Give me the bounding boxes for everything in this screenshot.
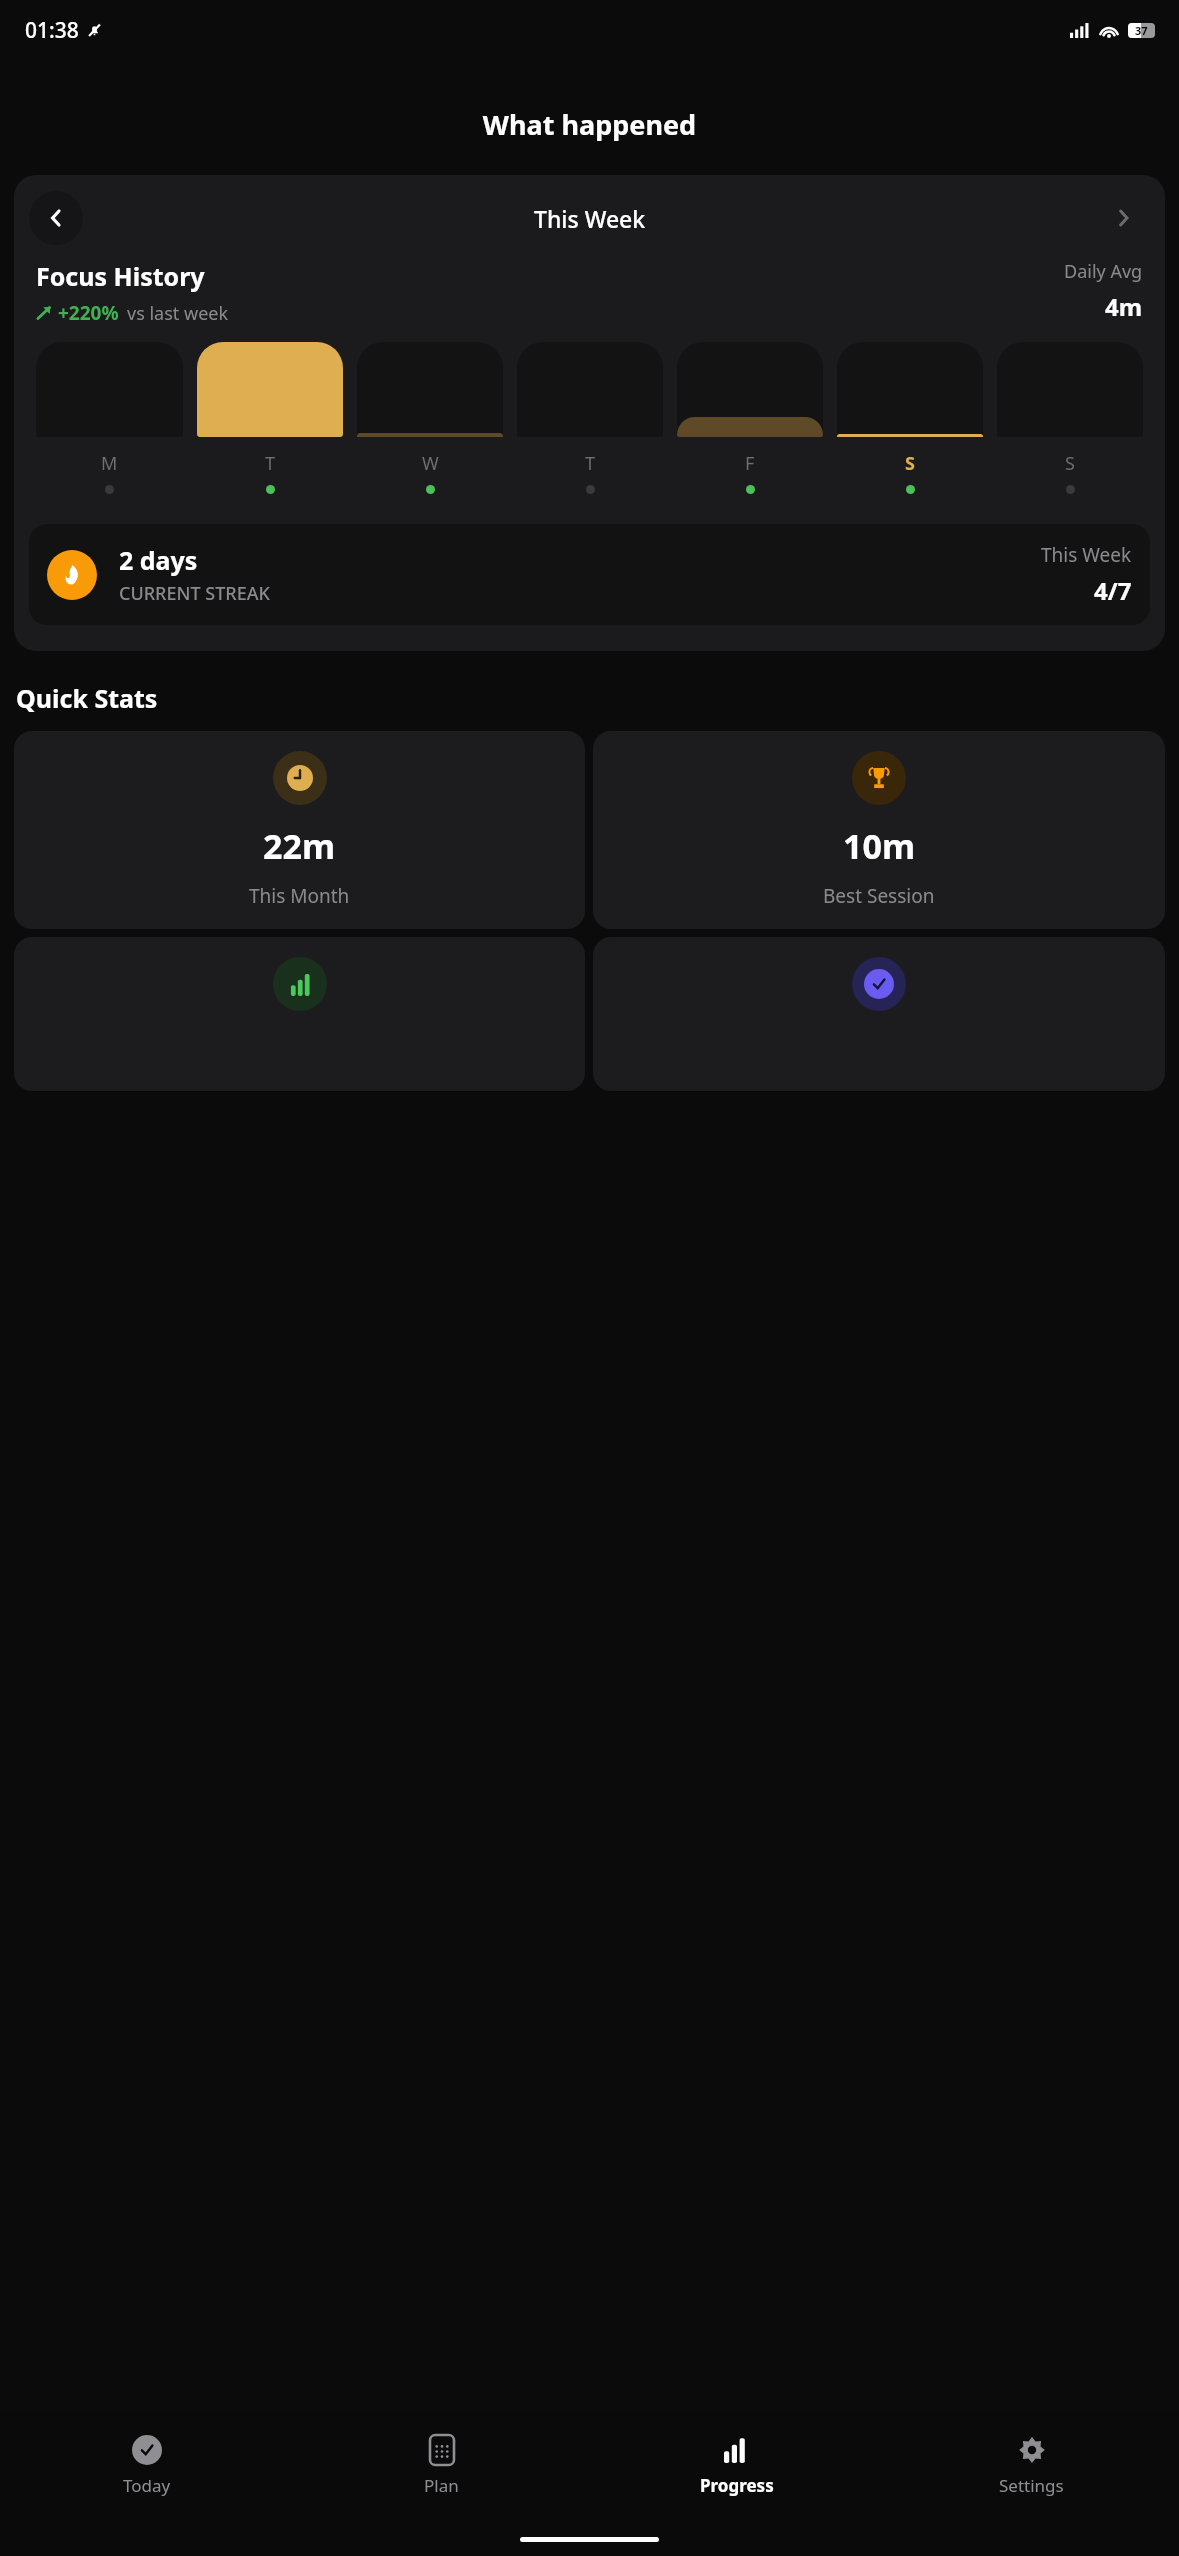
staticText: 4m <box>1105 290 1143 323</box>
staticText: 10m <box>843 823 916 869</box>
staticText: This Week <box>1041 542 1132 568</box>
staticText: 01:38 <box>25 16 79 45</box>
staticText: CURRENT STREAK <box>119 581 270 606</box>
staticText: This Month <box>249 883 350 909</box>
button[interactable]: Next week <box>1096 191 1150 245</box>
button[interactable]: Progress <box>589 2430 884 2499</box>
staticText: Settings <box>999 2474 1064 2497</box>
staticText: +220% <box>58 300 119 326</box>
staticText: This Week <box>534 203 646 234</box>
button[interactable]: Today <box>0 2430 294 2499</box>
staticText: Plan <box>424 2474 459 2497</box>
button[interactable]: Settings <box>884 2430 1179 2499</box>
staticText: Best Session <box>823 883 935 909</box>
staticText: What happened <box>0 106 1179 143</box>
staticText: 22m <box>263 823 336 869</box>
staticText: T <box>265 451 276 476</box>
button[interactable] <box>14 937 585 1091</box>
staticText: vs last week <box>127 301 229 326</box>
button[interactable] <box>593 937 1165 1091</box>
button[interactable]: 2 days <box>29 524 1150 625</box>
staticText: 2 days <box>119 543 198 577</box>
staticText: W <box>422 451 439 476</box>
staticText: Progress <box>700 2474 774 2497</box>
staticText: 37 <box>1135 23 1148 38</box>
staticText: Today <box>123 2474 171 2497</box>
button[interactable]: Plan <box>294 2430 589 2499</box>
button[interactable]: 22m <box>14 731 585 929</box>
staticText: Focus History <box>36 259 205 293</box>
button[interactable]: Previous week <box>29 191 83 245</box>
staticText: M <box>101 451 118 476</box>
staticText: Daily Avg <box>1064 259 1143 284</box>
staticText: F <box>745 451 755 476</box>
button[interactable]: 10m <box>593 731 1165 929</box>
staticText: S <box>905 451 915 476</box>
staticText: S <box>1065 451 1075 476</box>
staticText: Quick Stats <box>16 681 158 715</box>
staticText: T <box>585 451 596 476</box>
staticText: 4/7 <box>1094 574 1132 607</box>
